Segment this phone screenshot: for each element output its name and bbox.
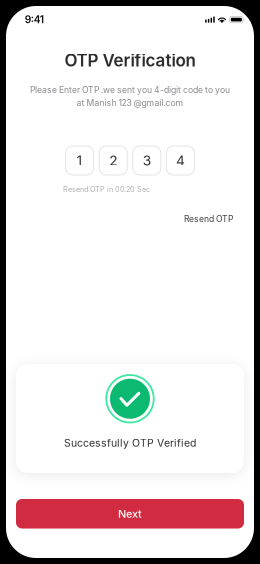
staticText: Successfully OTP Verified bbox=[64, 436, 196, 449]
staticText: Next bbox=[118, 507, 142, 520]
button[interactable]: 4 bbox=[166, 146, 194, 175]
staticText: 3 bbox=[143, 152, 151, 169]
staticText: 1 bbox=[77, 152, 83, 169]
staticText: 4 bbox=[176, 152, 185, 169]
button[interactable]: 3 bbox=[133, 146, 161, 175]
button[interactable]: 1 bbox=[66, 146, 94, 175]
staticText: Resend OTP bbox=[184, 214, 233, 224]
button[interactable]: Next bbox=[16, 499, 244, 528]
staticText: OTP Verification bbox=[64, 50, 195, 71]
staticText: at Manish 123 @gmail.com bbox=[76, 98, 183, 108]
button[interactable]: Resend OTP bbox=[184, 214, 233, 224]
staticText: Resend OTP in 00.20 Sec bbox=[63, 185, 150, 194]
staticText: Please Enter OTP .we sent you 4-digit co… bbox=[30, 85, 230, 95]
staticText: 9:41 bbox=[25, 13, 44, 26]
staticText: 2 bbox=[109, 152, 117, 169]
button[interactable]: 2 bbox=[99, 146, 127, 175]
